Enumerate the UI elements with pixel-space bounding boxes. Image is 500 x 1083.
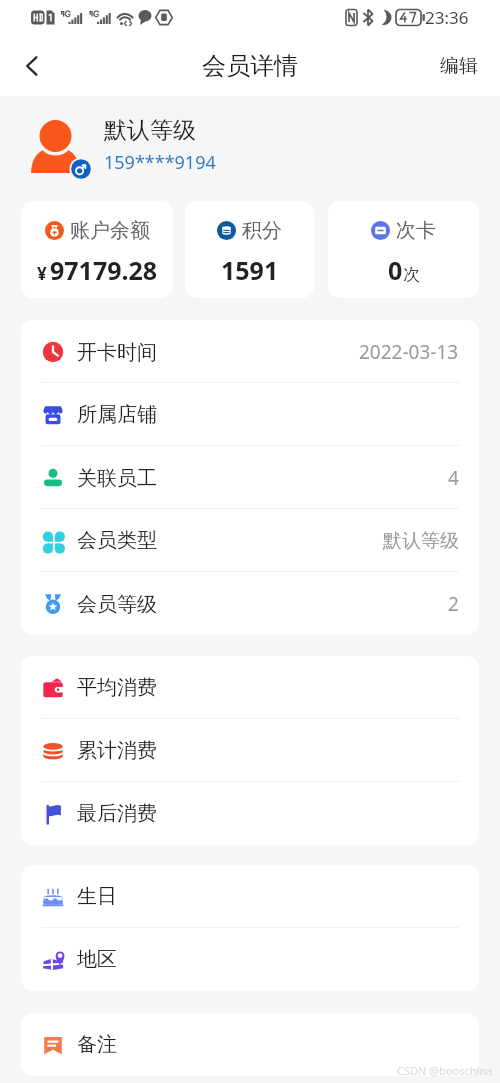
staticText: 2 [448,591,459,617]
staticText: 默认等级 [383,529,459,553]
staticText: 1591 [221,253,279,287]
button[interactable]: 平均消费 [21,656,479,719]
staticText: 所属店铺 [77,402,157,427]
button[interactable]: 开卡时间 [21,320,479,383]
staticText: 地区 [77,947,117,972]
staticText: 次 [403,264,420,285]
button[interactable]: 编辑 [422,40,500,92]
button[interactable]: 最后消费 [21,782,479,845]
staticText: 会员等级 [77,592,157,617]
staticText: 账户余额 [70,218,150,243]
staticText: 2022-03-13 [359,339,459,365]
button[interactable]: 生日 [21,865,479,928]
staticText: 累计消费 [77,738,157,763]
staticText: 次卡 [396,218,436,243]
button[interactable]: 累计消费 [21,719,479,782]
staticText: 备注 [77,1032,117,1057]
staticText: 最后消费 [77,801,157,826]
staticText: 开卡时间 [77,340,157,365]
staticText: 会员类型 [77,528,157,553]
button[interactable]: 次卡 [328,201,479,298]
staticText: ¥ [37,262,47,285]
staticText: 会员详情 [202,51,298,81]
button[interactable]: 备注 [21,1013,479,1076]
button[interactable]: 地区 [21,928,479,991]
staticText: 积分 [242,218,282,243]
staticText: 159****9194 [104,150,216,175]
staticText: 23:36 [425,6,469,29]
button[interactable]: 所属店铺 [21,383,479,446]
staticText: 编辑 [440,54,478,78]
button[interactable]: 关联员工 [21,446,479,509]
staticText: 关联员工 [77,466,157,491]
staticText: 平均消费 [77,675,157,700]
button[interactable]: Back [10,44,54,88]
staticText: 0 [388,253,403,287]
staticText: 4 [448,465,459,491]
staticText: 默认等级 [104,116,196,145]
staticText: 97179.28 [50,253,158,287]
button[interactable]: 账户余额 [21,201,173,298]
button[interactable]: 会员等级 [21,572,479,635]
staticText: CSDN @booschina [397,1063,493,1078]
button[interactable]: 会员类型 [21,509,479,572]
staticText: 生日 [77,884,117,909]
button[interactable]: 积分 [185,201,314,298]
